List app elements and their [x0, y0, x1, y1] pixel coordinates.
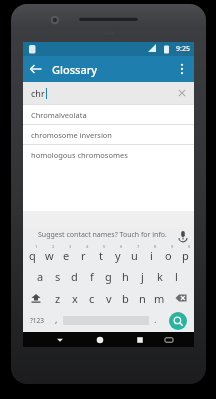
button[interactable]: 2 — [41, 243, 58, 265]
button[interactable]: 4 — [75, 243, 92, 265]
staticText: a — [37, 269, 44, 284]
staticText: 0 — [188, 244, 191, 249]
button[interactable]: g — [100, 265, 117, 287]
staticText: 3 — [69, 244, 72, 249]
staticText: 1 — [35, 244, 38, 249]
staticText: chr — [31, 87, 45, 99]
staticText: 7 — [137, 244, 140, 249]
button[interactable]: f — [83, 265, 100, 287]
button[interactable]: Search — [169, 312, 187, 330]
button[interactable]: j — [134, 265, 151, 287]
staticText: e — [63, 248, 70, 263]
button[interactable]: Shift — [23, 287, 49, 309]
button[interactable]: 6 — [109, 243, 126, 265]
staticText: g — [105, 269, 112, 284]
staticText: 9 — [171, 244, 174, 249]
button[interactable]: 3 — [58, 243, 75, 265]
staticText: z — [55, 291, 61, 306]
button[interactable]: Chromalveolata — [23, 104, 194, 124]
button[interactable]: 1 — [23, 243, 41, 265]
staticText: homologous chromosomes — [31, 150, 128, 160]
button[interactable]: Backspace — [168, 287, 194, 309]
staticText: 8 — [154, 244, 157, 249]
button[interactable]: 8 — [143, 243, 160, 265]
staticText: 4 — [86, 244, 89, 249]
button[interactable]: Recent apps — [120, 332, 160, 347]
staticText: b — [122, 291, 129, 306]
staticText: 6 — [120, 244, 123, 249]
button[interactable]: k — [151, 265, 168, 287]
button[interactable]: v — [100, 287, 117, 309]
staticText: q — [29, 248, 36, 263]
button[interactable]: Switch keyboard — [160, 332, 178, 347]
button[interactable]: homologous chromosomes — [23, 144, 194, 164]
button[interactable]: Back — [26, 59, 46, 79]
button[interactable]: c — [83, 287, 100, 309]
button[interactable]: chr — [23, 82, 194, 104]
staticText: p — [182, 248, 189, 263]
staticText: chromosome inversion — [31, 130, 112, 140]
staticText: . — [154, 313, 157, 325]
button[interactable]: x — [66, 287, 83, 309]
staticText: c — [89, 291, 95, 306]
button[interactable]: z — [49, 287, 66, 309]
staticText: Suggest contact names? Touch for info. — [38, 230, 167, 240]
button[interactable]: 9 — [160, 243, 177, 265]
staticText: m — [154, 291, 165, 306]
button[interactable]: Voice input — [176, 228, 190, 242]
staticText: o — [165, 248, 172, 263]
staticText: d — [71, 269, 78, 284]
button[interactable]: Back — [39, 332, 80, 347]
staticText: u — [131, 248, 138, 263]
button[interactable]: . — [149, 309, 162, 332]
button[interactable]: Home — [80, 332, 120, 347]
staticText: Chromalveolata — [31, 110, 87, 120]
staticText: w — [45, 248, 54, 263]
staticText: l — [175, 269, 178, 284]
button[interactable]: l — [168, 265, 185, 287]
staticText: k — [157, 269, 163, 284]
staticText: ?123 — [30, 316, 44, 325]
button[interactable]: n — [134, 287, 151, 309]
staticText: n — [139, 291, 146, 306]
button[interactable]: s — [49, 265, 66, 287]
button[interactable]: 0 — [177, 243, 194, 265]
staticText: Glossary — [52, 62, 98, 77]
staticText: j — [141, 269, 144, 284]
staticText: s — [55, 269, 61, 284]
staticText: 9:25 — [176, 44, 190, 54]
button[interactable]: b — [117, 287, 134, 309]
staticText: i — [150, 248, 153, 263]
button[interactable]: Suggest contact names? Touch for info. — [23, 227, 194, 243]
button[interactable]: 5 — [92, 243, 109, 265]
button[interactable]: d — [66, 265, 83, 287]
button[interactable]: h — [117, 265, 134, 287]
staticText: 2 — [52, 244, 55, 249]
button[interactable]: a — [32, 265, 49, 287]
button[interactable]: 7 — [126, 243, 143, 265]
staticText: , — [55, 313, 58, 325]
button[interactable]: m — [151, 287, 168, 309]
button[interactable]: Clear search — [174, 85, 190, 101]
button[interactable]: , — [50, 309, 63, 332]
staticText: h — [122, 269, 129, 284]
button[interactable]: ?123 — [23, 309, 50, 332]
staticText: y — [115, 248, 121, 263]
staticText: 5 — [103, 244, 106, 249]
button[interactable]: More options — [172, 59, 192, 79]
staticText: t — [99, 248, 103, 263]
staticText: f — [90, 269, 94, 284]
button[interactable]: chromosome inversion — [23, 124, 194, 144]
staticText: x — [72, 291, 78, 306]
staticText: r — [81, 248, 86, 263]
staticText: v — [106, 291, 112, 306]
